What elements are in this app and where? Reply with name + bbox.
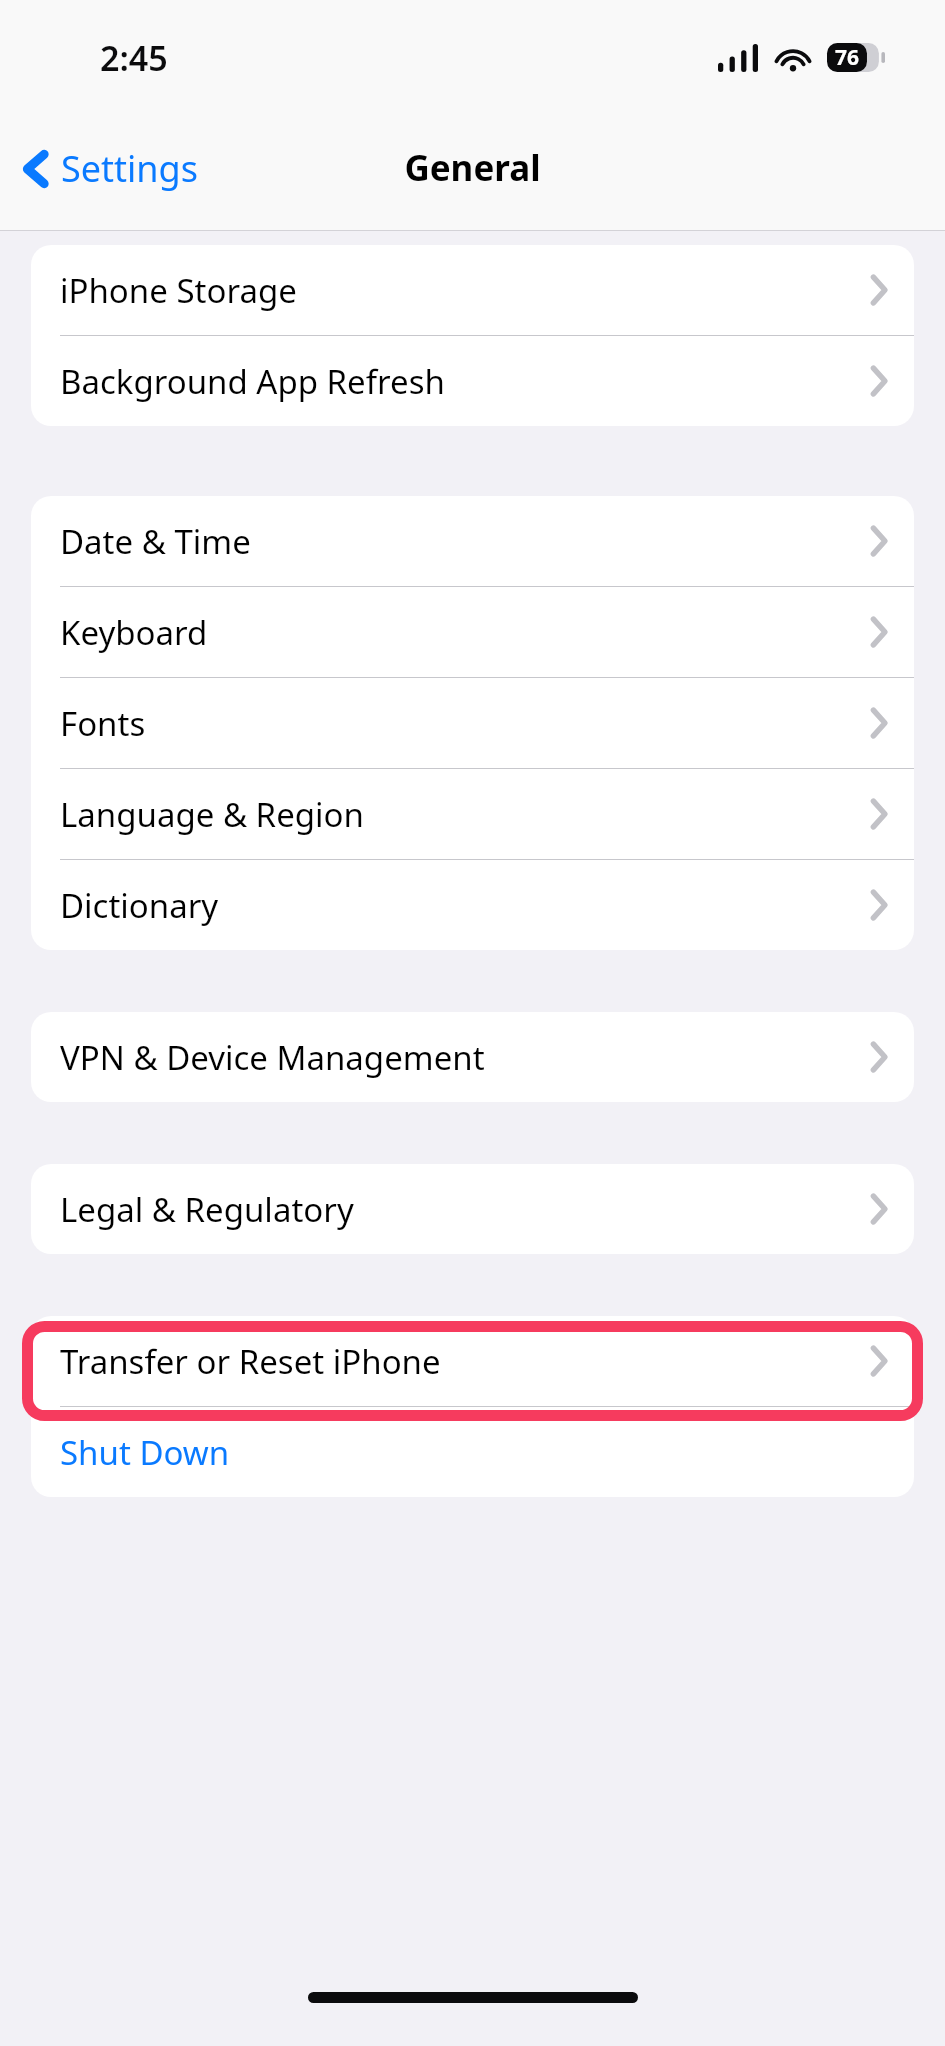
button[interactable]: Settings [14, 132, 208, 205]
staticText: Language & Region [60, 792, 364, 837]
other: Open Dictionary [870, 890, 887, 920]
button[interactable]: Background App Refresh [31, 336, 914, 426]
button[interactable]: VPN & Device Management [31, 1012, 914, 1102]
other: Open iPhone Storage [870, 275, 887, 305]
staticText: VPN & Device Management [60, 1035, 485, 1080]
staticText: Settings [61, 144, 198, 193]
button[interactable]: Date & Time [31, 496, 914, 586]
other: Open Language & Region [870, 799, 887, 829]
other: Open VPN & Device Management [870, 1042, 887, 1072]
staticText: General [404, 144, 541, 192]
other: Open Keyboard [870, 617, 887, 647]
staticText: 2:45 [100, 35, 168, 81]
staticText: Legal & Regulatory [60, 1187, 354, 1232]
button[interactable]: Legal & Regulatory [31, 1164, 914, 1254]
other: Open Legal & Regulatory [870, 1194, 887, 1224]
staticText: iPhone Storage [60, 268, 297, 313]
button[interactable]: Keyboard [31, 587, 914, 677]
button[interactable]: Language & Region [31, 769, 914, 859]
staticText: Transfer or Reset iPhone [60, 1339, 441, 1384]
button[interactable]: iPhone Storage [31, 245, 914, 335]
button[interactable]: Transfer or Reset iPhone [31, 1316, 914, 1406]
button[interactable]: Shut Down [31, 1407, 914, 1497]
other: Open Date & Time [870, 526, 887, 556]
staticText: Dictionary [60, 883, 219, 928]
button[interactable]: Dictionary [31, 860, 914, 950]
staticText: Background App Refresh [60, 359, 445, 404]
other: Open Transfer or Reset iPhone [870, 1346, 887, 1376]
staticText: Date & Time [60, 519, 251, 564]
button[interactable]: Fonts [31, 678, 914, 768]
staticText: Shut Down [60, 1430, 230, 1475]
staticText: Fonts [60, 701, 146, 746]
other: Open Background App Refresh [870, 366, 887, 396]
staticText: Keyboard [60, 610, 208, 655]
staticText: 76 [835, 43, 860, 72]
other: Open Fonts [870, 708, 887, 738]
